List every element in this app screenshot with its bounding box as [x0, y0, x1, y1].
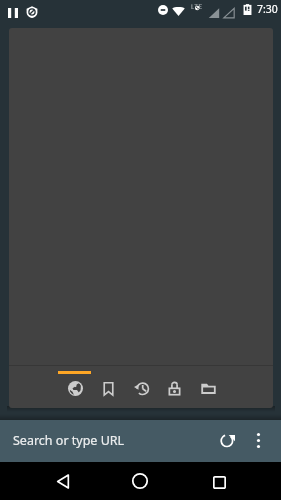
button[interactable]: Home — [121, 462, 159, 500]
button[interactable]: Tabs — [59, 372, 91, 404]
button[interactable]: History — [125, 372, 157, 404]
staticText: Search or type URL — [13, 432, 125, 449]
button[interactable]: Recent apps — [200, 463, 238, 500]
button[interactable]: Bookmarks — [92, 372, 124, 404]
button[interactable]: Back — [44, 462, 82, 500]
button[interactable]: Downloads — [192, 372, 224, 404]
button[interactable]: Incognito — [158, 372, 190, 404]
staticText: 7:30 — [257, 2, 278, 16]
button[interactable]: More options — [240, 422, 276, 458]
button[interactable]: Reload — [209, 422, 245, 458]
button[interactable]: Search or type URL — [0, 420, 210, 462]
